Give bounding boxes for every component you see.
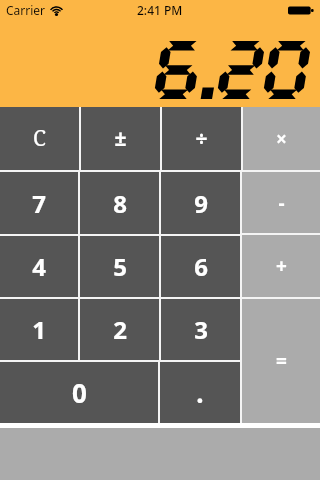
staticText: 3: [194, 313, 208, 346]
button[interactable]: C: [0, 107, 79, 170]
staticText: Carrier: [6, 2, 46, 18]
staticText: ÷: [195, 124, 208, 153]
button[interactable]: 5: [80, 236, 159, 297]
staticText: 2:41 PM: [137, 2, 183, 18]
button[interactable]: +: [242, 235, 320, 297]
staticText: 4: [32, 250, 46, 283]
button[interactable]: =: [242, 299, 320, 423]
button[interactable]: 8: [80, 172, 159, 234]
button[interactable]: ÷: [162, 107, 241, 170]
button[interactable]: -: [242, 172, 320, 233]
button[interactable]: 0: [0, 362, 158, 423]
button[interactable]: ×: [243, 107, 320, 170]
staticText: 8: [113, 187, 127, 220]
staticText: 7: [32, 187, 46, 220]
button[interactable]: 3: [161, 299, 240, 360]
button[interactable]: 2: [80, 299, 159, 360]
staticText: 5: [113, 250, 127, 283]
staticText: =: [276, 348, 287, 374]
button[interactable]: 1: [0, 299, 78, 360]
button[interactable]: ±: [81, 107, 160, 170]
staticText: ±: [114, 124, 127, 153]
staticText: .: [196, 375, 204, 410]
button[interactable]: 7: [0, 172, 78, 234]
button[interactable]: 9: [161, 172, 240, 234]
staticText: 6: [194, 250, 208, 283]
button[interactable]: .: [160, 362, 240, 423]
button[interactable]: 6: [161, 236, 240, 297]
staticText: 9: [194, 187, 208, 220]
staticText: 0: [72, 375, 87, 410]
staticText: -: [278, 190, 285, 216]
staticText: 1: [32, 313, 46, 346]
staticText: +: [276, 253, 287, 279]
staticText: C: [33, 124, 46, 153]
staticText: ×: [276, 126, 287, 152]
staticText: 2: [113, 313, 127, 346]
button[interactable]: 4: [0, 236, 78, 297]
